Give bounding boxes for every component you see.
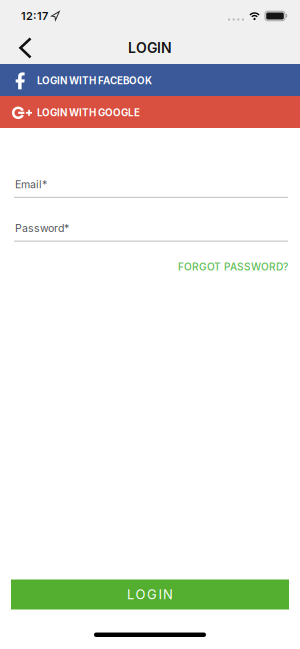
staticText: LOGIN — [127, 587, 173, 602]
staticText: 12:17 — [21, 9, 48, 23]
button[interactable]: LOGIN WITH GOOGLE — [0, 96, 300, 128]
button[interactable]: LOGIN — [11, 579, 289, 609]
staticText: LOGIN WITH GOOGLE — [37, 107, 140, 119]
staticText: FORGOT PASSWORD? — [178, 261, 288, 273]
staticText: Password* — [15, 222, 69, 235]
button[interactable]: FORGOT PASSWORD? — [178, 261, 288, 273]
staticText: LOGIN — [128, 39, 172, 56]
button[interactable]: Back — [0, 37, 44, 59]
staticText: LOGIN WITH FACEBOOK — [37, 75, 152, 87]
button[interactable]: LOGIN WITH FACEBOOK — [0, 64, 300, 96]
staticText: Email* — [15, 178, 47, 191]
